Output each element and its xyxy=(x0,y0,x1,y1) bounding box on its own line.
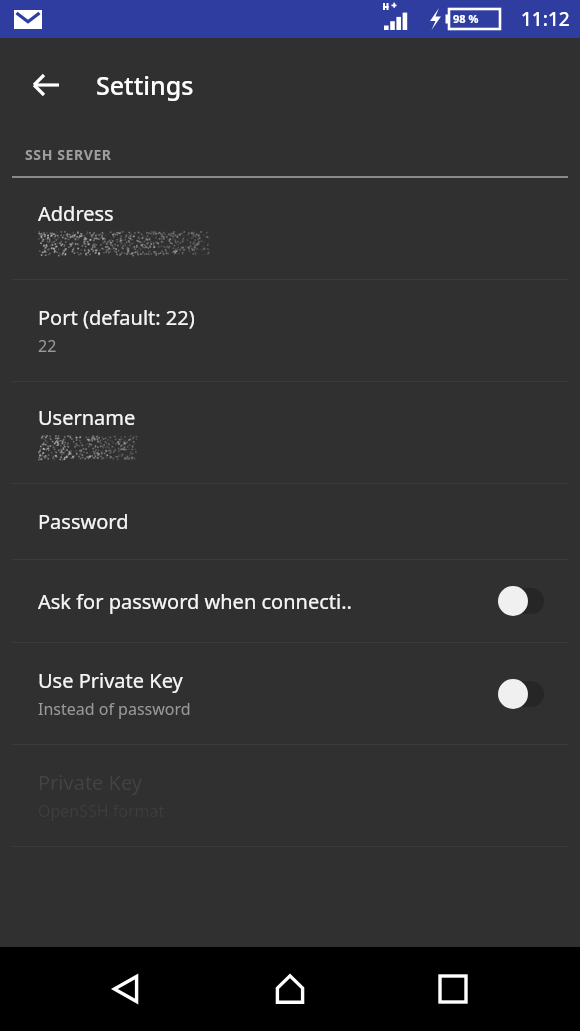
button[interactable]: Password xyxy=(0,484,580,559)
staticText: 22 xyxy=(38,335,57,357)
staticText: Private Key xyxy=(38,769,143,796)
button[interactable]: Ask for password when connecti.. xyxy=(0,560,580,642)
staticText: OpenSSH format xyxy=(38,800,165,822)
staticText: Ask for password when connecti.. xyxy=(38,588,352,615)
button[interactable]: Username xyxy=(0,382,580,483)
button[interactable]: Port (default: 22) xyxy=(0,280,580,381)
button[interactable]: Recent apps xyxy=(417,953,489,1025)
staticText: Instead of password xyxy=(38,698,191,720)
button[interactable]: Back xyxy=(22,61,70,109)
button[interactable]: Address xyxy=(0,178,580,279)
button[interactable]: Home xyxy=(254,953,326,1025)
button[interactable]: Use Private Key xyxy=(0,643,580,744)
staticText: Use Private Key xyxy=(38,667,183,694)
staticText: Settings xyxy=(96,68,194,102)
staticText: 98 % xyxy=(453,11,479,26)
staticText: Address xyxy=(38,200,114,227)
button[interactable]: Back xyxy=(91,953,163,1025)
staticText: Port (default: 22) xyxy=(38,304,195,331)
staticText: 11:12 xyxy=(521,6,570,32)
staticText: SSH SERVER xyxy=(25,145,112,164)
staticText: Username xyxy=(38,404,136,431)
staticText: Password xyxy=(38,508,129,535)
